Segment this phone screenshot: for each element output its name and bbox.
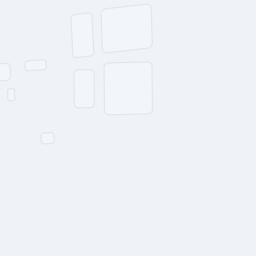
button[interactable]: Bar xyxy=(25,61,46,71)
button[interactable]: Tile xyxy=(7,89,14,101)
button[interactable]: Tile xyxy=(71,15,92,58)
button[interactable]: Tile xyxy=(41,133,54,144)
button[interactable]: Card xyxy=(101,9,151,53)
button[interactable]: Tile xyxy=(0,64,10,81)
button[interactable]: Tile xyxy=(74,70,94,108)
